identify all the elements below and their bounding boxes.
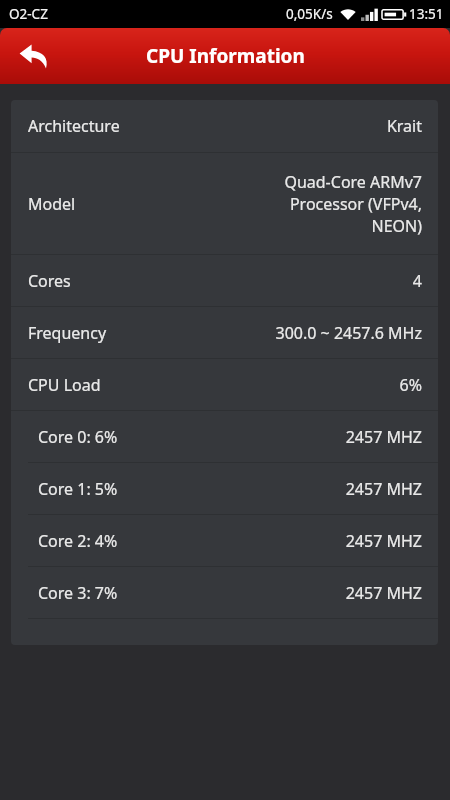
staticText: 300.0 ~ 2457.6 MHz <box>275 322 422 344</box>
staticText: O2-CZ <box>9 5 48 23</box>
staticText: Core 1: 5% <box>38 478 118 500</box>
staticText: Core 0: 6% <box>38 426 118 448</box>
staticText: CPU Information <box>146 43 305 69</box>
button[interactable]: Core 1: 5% <box>11 463 438 514</box>
staticText: Model <box>28 193 76 215</box>
staticText: 4 <box>412 270 422 292</box>
staticText: Krait <box>386 115 422 137</box>
staticText: Cores <box>28 270 71 292</box>
button[interactable]: Frequency <box>11 307 438 358</box>
staticText: 2457 MHZ <box>345 478 422 500</box>
button[interactable]: CPU Load <box>11 359 438 410</box>
staticText: 6% <box>399 374 422 396</box>
button[interactable]: Core 2: 4% <box>11 515 438 566</box>
staticText: Frequency <box>28 322 107 344</box>
staticText: Core 2: 4% <box>38 530 118 552</box>
button[interactable]: Back <box>10 32 58 80</box>
staticText: 2457 MHZ <box>345 426 422 448</box>
button[interactable]: Core 3: 7% <box>11 567 438 618</box>
staticText: CPU Load <box>28 374 101 396</box>
staticText: 13:51 <box>409 5 444 23</box>
staticText: 2457 MHZ <box>345 582 422 604</box>
staticText: Architecture <box>28 115 120 137</box>
staticText: Quad-Core ARMv7 Processor (VFPv4, NEON) <box>250 171 422 237</box>
staticText: 2457 MHZ <box>345 530 422 552</box>
button[interactable]: Architecture <box>11 100 438 152</box>
button[interactable]: Cores <box>11 255 438 306</box>
button[interactable]: Model <box>11 153 438 254</box>
staticText: Core 3: 7% <box>38 582 118 604</box>
button[interactable]: Core 0: 6% <box>11 411 438 462</box>
staticText: 0,05K/s <box>286 5 333 23</box>
